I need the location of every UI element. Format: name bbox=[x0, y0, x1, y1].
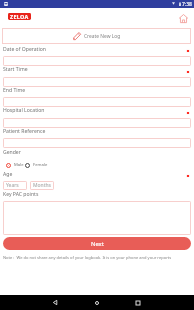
button[interactable]: Years bbox=[3, 181, 27, 190]
button[interactable]: Home bbox=[87, 295, 107, 310]
staticText: Create New Log bbox=[84, 33, 121, 40]
button[interactable]: Months bbox=[30, 181, 54, 190]
staticText: Next bbox=[91, 240, 104, 248]
staticText: Date of Operation bbox=[3, 46, 46, 53]
button[interactable] bbox=[3, 118, 191, 128]
button[interactable] bbox=[3, 97, 191, 107]
staticText: Male bbox=[14, 162, 24, 168]
button[interactable]: ZELOA bbox=[8, 13, 31, 20]
staticText: Hospital Location bbox=[3, 107, 45, 114]
button[interactable]: Recent apps bbox=[128, 295, 148, 310]
button[interactable] bbox=[3, 138, 191, 148]
button[interactable] bbox=[3, 56, 191, 66]
button[interactable]: Create New Log bbox=[2, 28, 191, 44]
staticText: Start Time bbox=[3, 66, 28, 73]
staticText: Female bbox=[33, 162, 48, 168]
staticText: End Time bbox=[3, 87, 26, 94]
button[interactable] bbox=[3, 77, 191, 87]
staticText: Gender bbox=[3, 149, 21, 156]
staticText: Age bbox=[3, 171, 13, 178]
staticText: ZELOA bbox=[10, 13, 29, 20]
staticText: Years bbox=[6, 182, 19, 189]
staticText: 7:38 bbox=[182, 1, 192, 8]
button[interactable]: Home bbox=[178, 13, 188, 23]
button[interactable]: Male bbox=[5, 160, 21, 170]
staticText: Months bbox=[33, 182, 51, 189]
staticText: Key PAC points bbox=[3, 191, 39, 198]
staticText: Note : We do not share any details of yo… bbox=[3, 255, 172, 261]
staticText: Patient Reference bbox=[3, 128, 46, 135]
button[interactable] bbox=[3, 201, 191, 235]
button[interactable]: Back bbox=[45, 295, 65, 310]
button[interactable]: Next bbox=[3, 237, 191, 250]
button[interactable]: Female bbox=[24, 160, 42, 170]
